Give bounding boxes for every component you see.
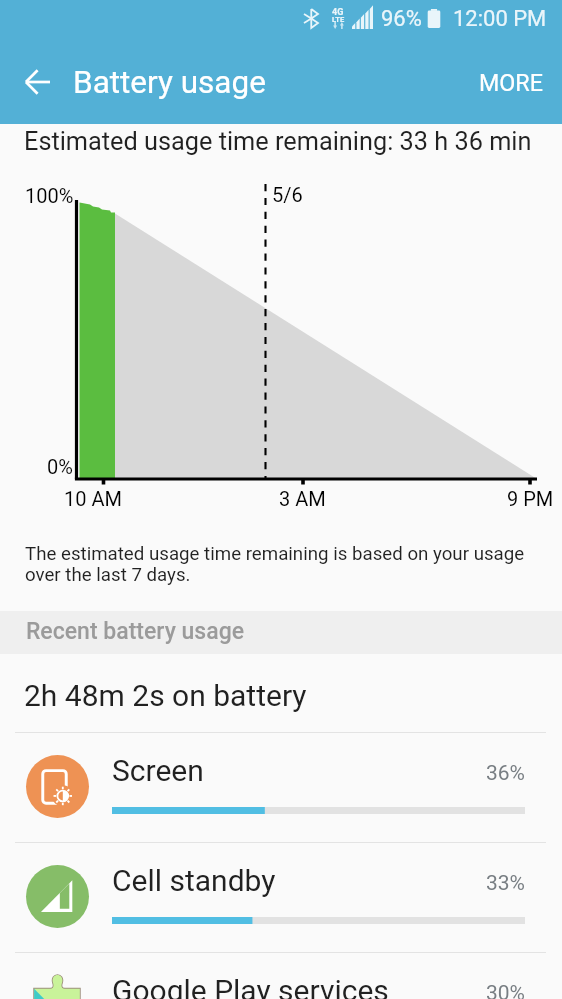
button[interactable]: Google Play services (0, 952, 562, 999)
staticText: Estimated usage time remaining: 33 h 36 … (24, 127, 532, 157)
staticText: Cell standby (112, 863, 276, 898)
button[interactable]: Cell standby (0, 842, 562, 952)
staticText: 36% (486, 761, 525, 786)
staticText: 96% (381, 6, 422, 32)
button[interactable]: MORE (460, 47, 562, 118)
staticText: 2h 48m 2s on battery (24, 678, 307, 713)
staticText: LTE (332, 15, 345, 24)
staticText: 0% (47, 455, 73, 478)
staticText: MORE (479, 69, 543, 96)
staticText: 30% (486, 981, 525, 999)
staticText: Screen (112, 753, 204, 788)
staticText: The estimated usage time remaining is ba… (25, 543, 538, 586)
staticText: 100% (25, 184, 74, 207)
staticText: Recent battery usage (26, 618, 245, 645)
staticText: 3 AM (279, 487, 326, 510)
staticText: Google Play services (112, 973, 389, 999)
staticText: 9 PM (507, 487, 554, 510)
staticText: 4G (332, 7, 344, 18)
staticText: Battery usage (73, 64, 266, 101)
staticText: 12:00 PM (453, 6, 547, 32)
button[interactable]: Navigate up (8, 40, 67, 124)
staticText: 10 AM (64, 487, 122, 510)
staticText: 5/6 (272, 183, 303, 206)
button[interactable]: Screen (0, 732, 562, 842)
staticText: 33% (486, 871, 525, 896)
